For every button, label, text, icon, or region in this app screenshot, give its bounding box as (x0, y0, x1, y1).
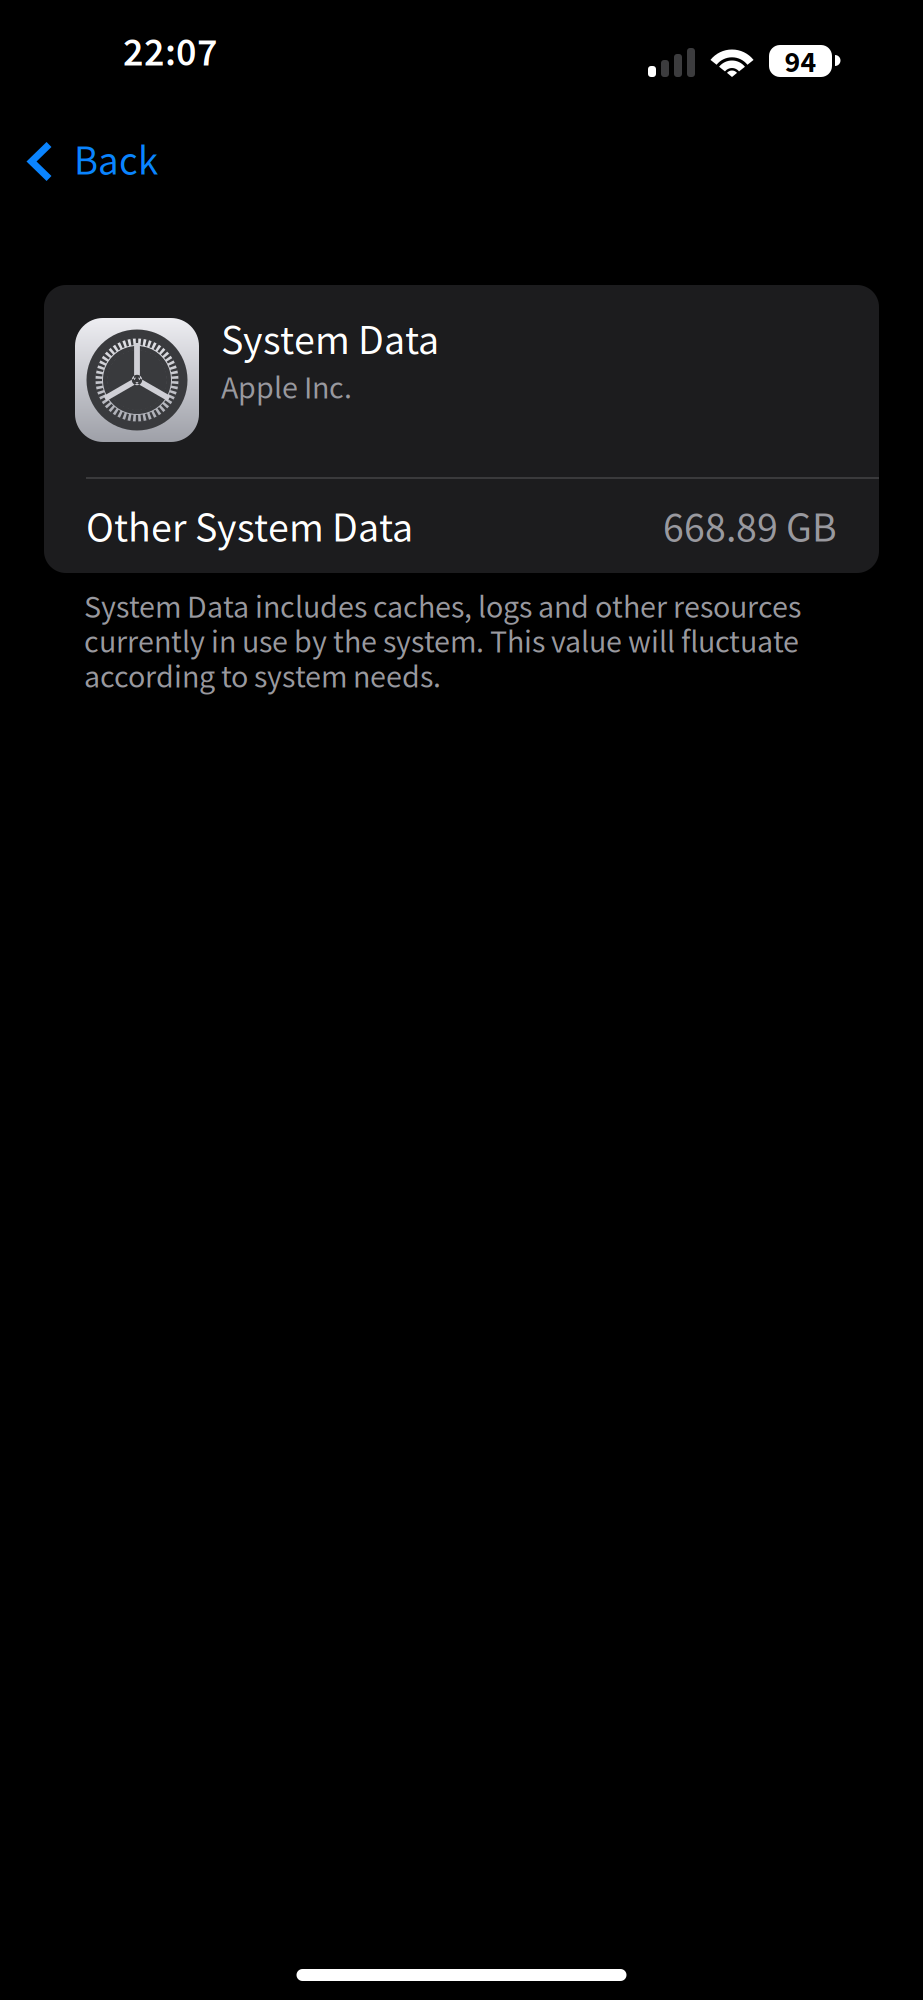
staticText: System Data includes caches, logs and ot… (84, 585, 801, 697)
button[interactable]: Other System Data (44, 479, 879, 573)
staticText: Back (74, 133, 158, 186)
staticText: 668.89 GB (663, 498, 837, 553)
staticText: Apple Inc. (221, 366, 352, 408)
button[interactable]: Back (0, 121, 180, 205)
staticText: Other System Data (86, 498, 413, 553)
staticText: 94 (784, 41, 816, 81)
staticText: 22:07 (123, 25, 218, 77)
staticText: System Data (221, 311, 439, 366)
